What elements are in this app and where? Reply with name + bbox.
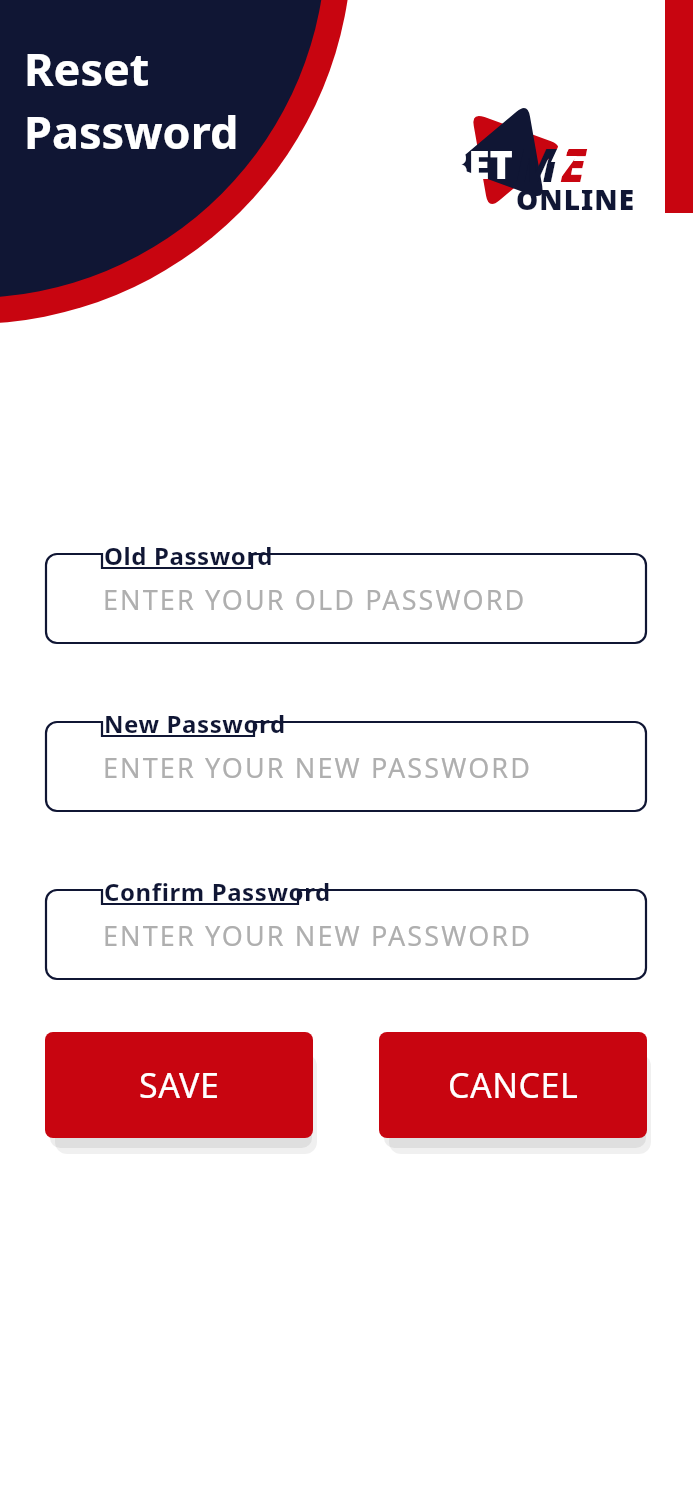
staticText: BET: [442, 137, 513, 190]
staticText: E: [560, 133, 586, 196]
button[interactable]: Confirm Password: [45, 874, 647, 980]
staticText: Password: [24, 101, 239, 162]
button[interactable]: CANCEL: [379, 1032, 647, 1138]
staticText: Reset: [24, 38, 150, 99]
other: BetMe Online logo: [432, 98, 652, 220]
staticText: SAVE: [139, 1062, 220, 1108]
staticText: ONLINE: [516, 180, 636, 218]
staticText: ENTER YOUR OLD PASSWORD: [103, 581, 527, 618]
staticText: CANCEL: [448, 1062, 579, 1108]
button[interactable]: SAVE: [45, 1032, 313, 1138]
staticText: Old Password: [104, 539, 274, 572]
staticText: ENTER YOUR NEW PASSWORD: [103, 917, 533, 954]
staticText: New Password: [104, 707, 286, 740]
button[interactable]: New Password: [45, 706, 647, 812]
staticText: M: [516, 133, 558, 196]
staticText: ENTER YOUR NEW PASSWORD: [103, 749, 533, 786]
staticText: Confirm Password: [104, 875, 331, 908]
button[interactable]: Old Password: [45, 538, 647, 644]
